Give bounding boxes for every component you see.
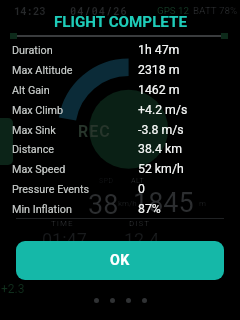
staticText: 38.4 km <box>138 142 183 156</box>
staticText: FLIGHT COMPLETE <box>54 13 187 31</box>
staticText: Max Speed <box>12 163 66 176</box>
staticText: ALT <box>131 177 145 185</box>
staticText: Max Climb <box>12 104 64 117</box>
staticText: Pressure Events <box>12 183 90 196</box>
button[interactable]: Max Sink <box>0 122 240 142</box>
staticText: m <box>199 199 207 208</box>
staticText: 87% <box>138 202 161 216</box>
staticText: 01:47 <box>42 229 87 250</box>
button[interactable]: Min Inflation <box>0 201 240 221</box>
staticText: OK <box>110 252 130 269</box>
staticText: Duration <box>12 44 53 57</box>
staticText: Min Inflation <box>12 203 72 216</box>
button[interactable]: Max Altitude <box>0 62 240 82</box>
staticText: 1h 47m <box>138 43 180 57</box>
staticText: 0 <box>138 182 145 196</box>
staticText: -3.8 m/s <box>138 123 184 137</box>
staticText: Distance <box>12 143 55 156</box>
staticText: SPD <box>99 177 114 185</box>
button[interactable]: Pressure Events <box>0 181 240 201</box>
staticText: 1462 m <box>138 83 180 97</box>
button[interactable]: Max Speed <box>0 161 240 181</box>
staticText: 38 <box>88 189 119 221</box>
staticText: GPS 12 <box>157 5 190 16</box>
button[interactable]: Distance <box>0 141 240 161</box>
staticText: Max Altitude <box>12 64 73 77</box>
staticText: 14:23 <box>14 4 46 18</box>
button[interactable]: Alt Gain <box>0 82 240 102</box>
staticText: 1845 <box>133 187 194 219</box>
staticText: TIME <box>51 219 74 228</box>
staticText: BATT 78% <box>193 5 238 16</box>
button[interactable]: Max Climb <box>0 102 240 122</box>
staticText: 12.4 <box>124 229 160 250</box>
staticText: km/h <box>118 199 137 208</box>
staticText: +2.3 <box>1 282 25 296</box>
staticText: Alt Gain <box>12 84 50 97</box>
staticText: REC <box>78 122 111 141</box>
staticText: +4.2 m/s <box>138 103 188 117</box>
button[interactable]: Duration <box>0 42 240 62</box>
staticText: 2318 m <box>138 63 180 77</box>
staticText: 52 km/h <box>138 162 184 176</box>
staticText: DIST <box>129 219 150 228</box>
button[interactable]: OK <box>16 241 224 280</box>
staticText: Max Sink <box>12 124 56 137</box>
staticText: 04/04/26 <box>70 4 128 18</box>
